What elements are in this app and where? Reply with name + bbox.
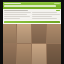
button[interactable]: Photo tile [32, 24, 46, 43]
button[interactable]: Photo tile [3, 44, 16, 64]
button[interactable]: Photo tile [47, 24, 61, 43]
button[interactable] [3, 2, 61, 9]
button[interactable]: Photo tile [17, 24, 31, 43]
button[interactable]: Photo tile [47, 44, 61, 64]
button[interactable]: Photo tile [17, 44, 31, 64]
button[interactable] [4, 10, 60, 11]
button[interactable]: Photo tile [3, 24, 16, 43]
button[interactable]: Primary action [4, 21, 60, 23]
button[interactable]: Photo tile [32, 44, 46, 64]
